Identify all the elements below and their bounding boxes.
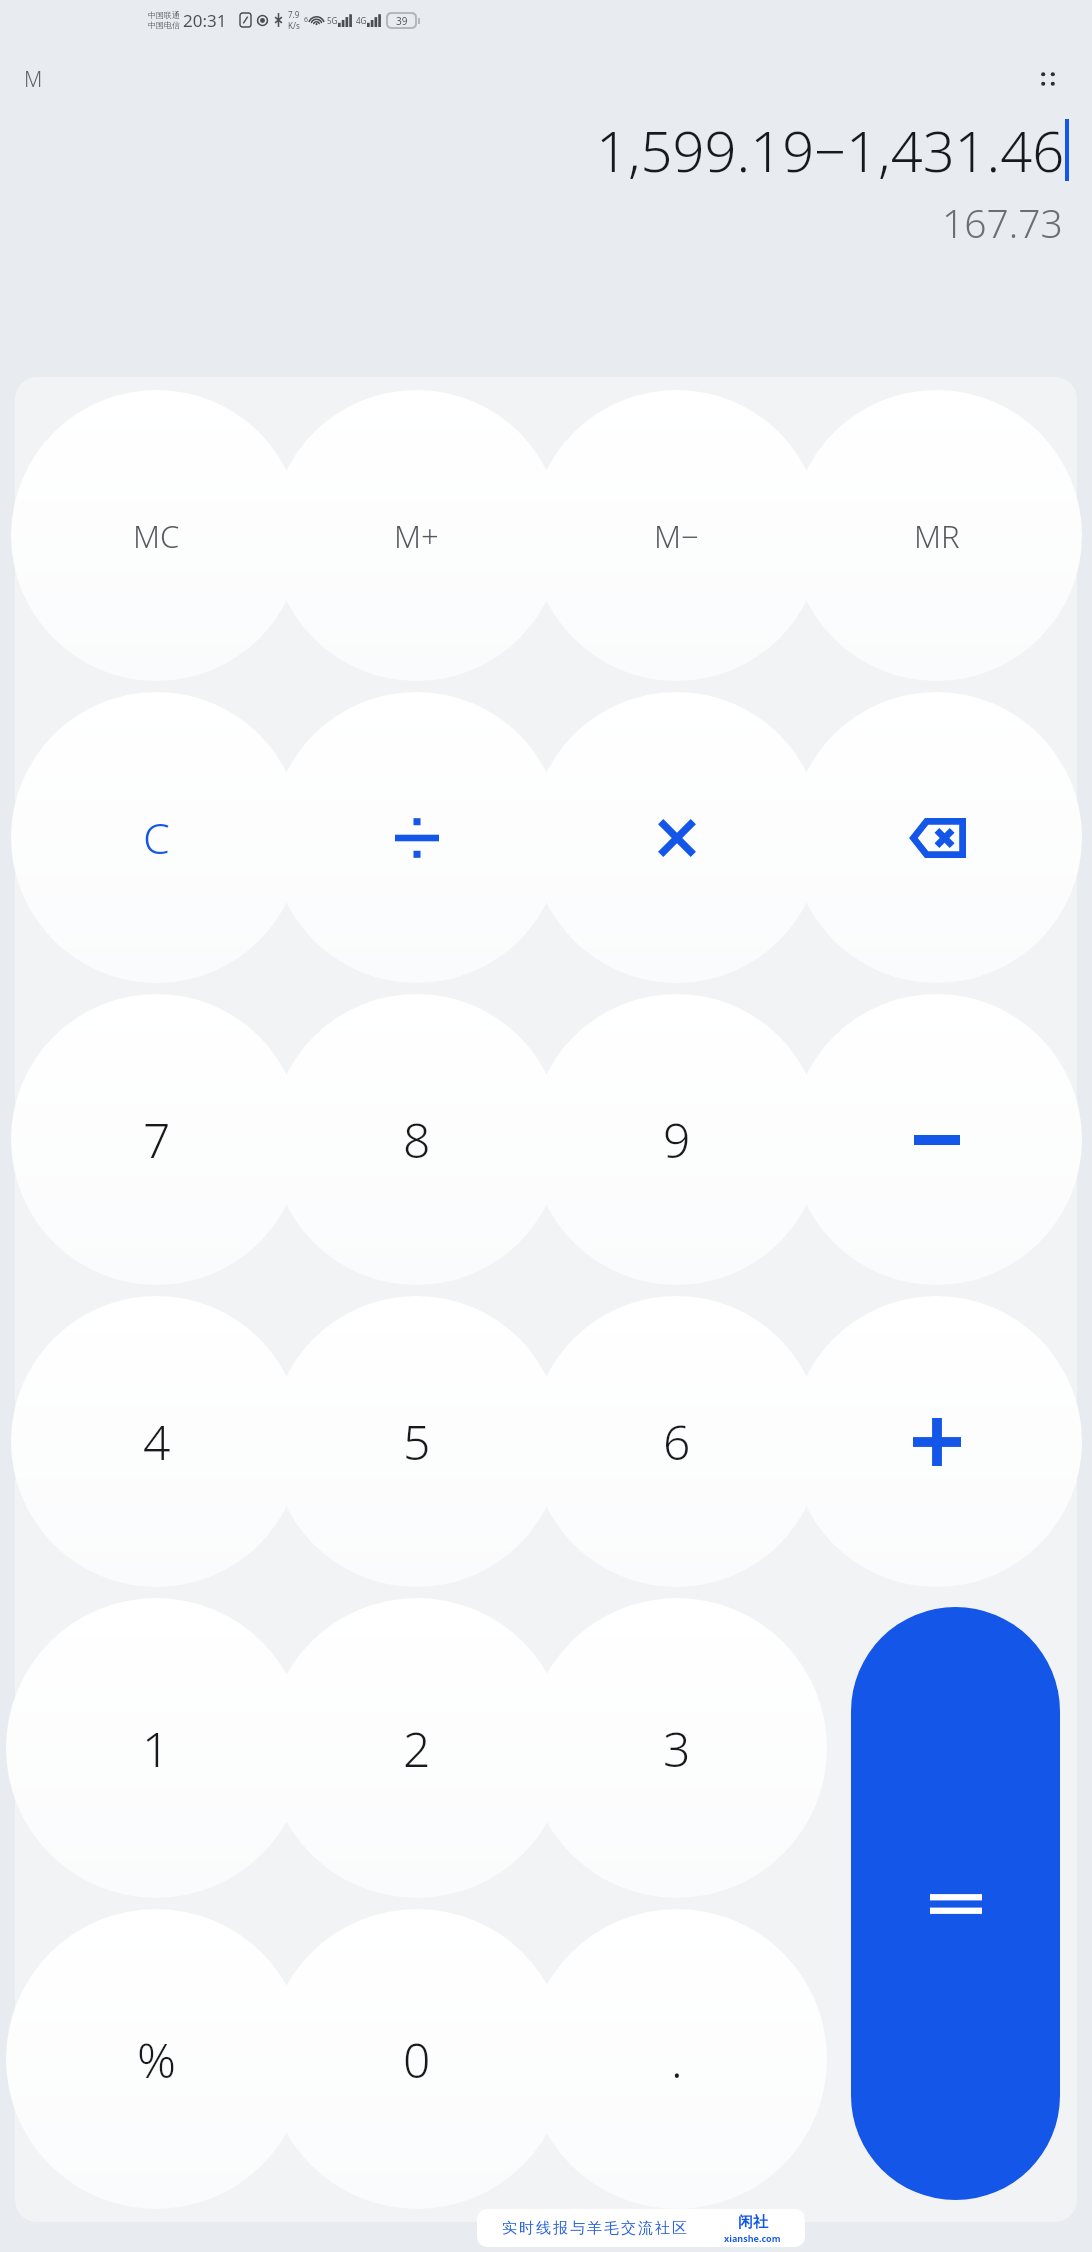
staticText: C [143, 808, 170, 867]
button[interactable]: C [11, 692, 302, 983]
staticText: . [671, 2027, 683, 2092]
button[interactable]: . [527, 1909, 827, 2209]
button[interactable]: 9 [531, 994, 822, 1285]
button[interactable]: M− [531, 390, 822, 681]
button[interactable]: 2 [267, 1598, 567, 1898]
staticText: 9 [663, 1107, 691, 1172]
button[interactable]: MR [791, 390, 1082, 681]
staticText: xianshe.com [724, 2232, 781, 2244]
staticText: 20:31 [183, 9, 227, 32]
staticText: K/s [288, 20, 300, 31]
staticText: M [24, 65, 43, 94]
staticText: 1 [142, 1716, 170, 1781]
button[interactable]: Backspace [791, 692, 1082, 983]
button[interactable]: Multiply [531, 692, 822, 983]
staticText: 6 [304, 15, 309, 25]
staticText: 7.9 [288, 9, 300, 20]
button[interactable]: Minus [791, 994, 1082, 1285]
button[interactable]: % [6, 1909, 306, 2209]
staticText: 3 [663, 1716, 691, 1781]
staticText: 中国联通 [148, 10, 180, 20]
button[interactable]: 3 [527, 1598, 827, 1898]
staticText: 1,599.19−1,431.46 [596, 112, 1065, 188]
staticText: 0 [403, 2027, 431, 2092]
staticText: 闲社 [738, 2213, 768, 2232]
staticText: 6 [663, 1409, 691, 1474]
button[interactable]: 1 [6, 1598, 306, 1898]
staticText: 39 [396, 14, 408, 27]
staticText: 7 [143, 1107, 171, 1172]
staticText: M+ [394, 515, 439, 557]
button[interactable]: 8 [271, 994, 562, 1285]
staticText: % [137, 2027, 176, 2092]
button[interactable]: More options [1022, 53, 1074, 105]
staticText: 中国电信 [148, 20, 180, 30]
button[interactable]: 6 [531, 1296, 822, 1587]
button[interactable]: 5 [271, 1296, 562, 1587]
staticText: 4 [143, 1409, 171, 1474]
staticText: M− [654, 515, 699, 557]
button[interactable]: Plus [791, 1296, 1082, 1587]
staticText: 5 [403, 1409, 431, 1474]
button[interactable]: M+ [271, 390, 562, 681]
button[interactable]: Equals [851, 1607, 1060, 2200]
staticText: MC [133, 515, 180, 557]
staticText: 8 [403, 1107, 431, 1172]
button[interactable]: 0 [267, 1909, 567, 2209]
staticText: 4G [356, 15, 367, 26]
staticText: 实时线报与羊毛交流社区 [501, 2219, 688, 2238]
button[interactable]: 7 [11, 994, 302, 1285]
staticText: MR [914, 515, 960, 557]
button[interactable]: 4 [11, 1296, 302, 1587]
staticText: 5G [327, 15, 338, 26]
staticText: 167.73 [942, 196, 1063, 249]
button[interactable]: Divide [271, 692, 562, 983]
button[interactable]: MC [11, 390, 302, 681]
staticText: 2 [403, 1716, 431, 1781]
